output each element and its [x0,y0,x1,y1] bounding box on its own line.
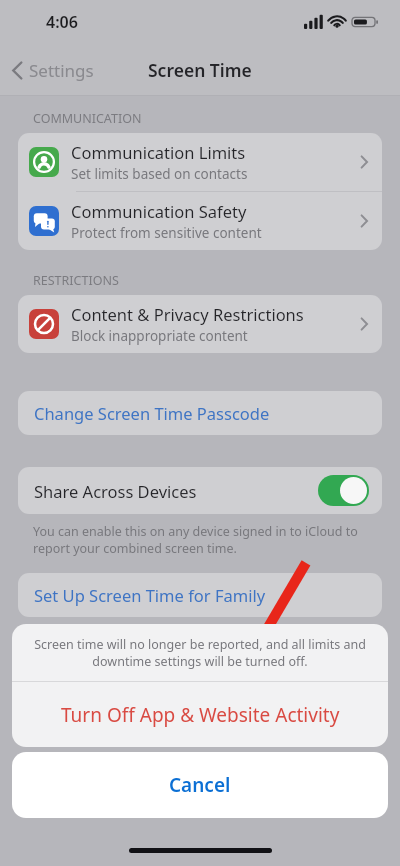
button[interactable]: Share Across Devices [18,467,382,514]
staticText: Protect from sensitive content [71,224,262,242]
staticText: Cancel [169,772,231,798]
staticText: Content & Privacy Restrictions [71,303,304,325]
staticText: Set limits based on contacts [71,165,248,183]
staticText: Set Up Screen Time for Family [34,584,266,606]
staticText: Screen time will no longer be reported, … [28,636,372,670]
staticText: Communication Safety [71,200,247,222]
staticText: Turn Off App & Website Activity [61,702,340,728]
button[interactable]: Settings [8,55,98,86]
button[interactable]: Change Screen Time Passcode [18,391,382,435]
button[interactable]: Content & Privacy Restrictions [18,295,382,353]
staticText: Screen Time [148,58,252,82]
button[interactable]: Cancel [12,752,388,818]
staticText: Settings [29,59,94,82]
staticText: Communication Limits [71,141,246,163]
button[interactable]: Set Up Screen Time for Family [18,573,382,617]
button[interactable]: Communication Safety [18,192,382,250]
staticText: You can enable this on any device signed… [33,523,367,557]
button[interactable]: Turn Off App & Website Activity [12,682,388,747]
staticText: 4:06 [46,11,78,33]
staticText: Share Across Devices [34,480,197,502]
staticText: COMMUNICATION [33,110,142,127]
button[interactable]: Communication Limits [18,133,382,191]
staticText: Change Screen Time Passcode [34,402,270,424]
staticText: Block inappropriate content [71,327,248,345]
button[interactable]: Share Across Devices, on [318,475,369,506]
staticText: RESTRICTIONS [33,272,119,289]
